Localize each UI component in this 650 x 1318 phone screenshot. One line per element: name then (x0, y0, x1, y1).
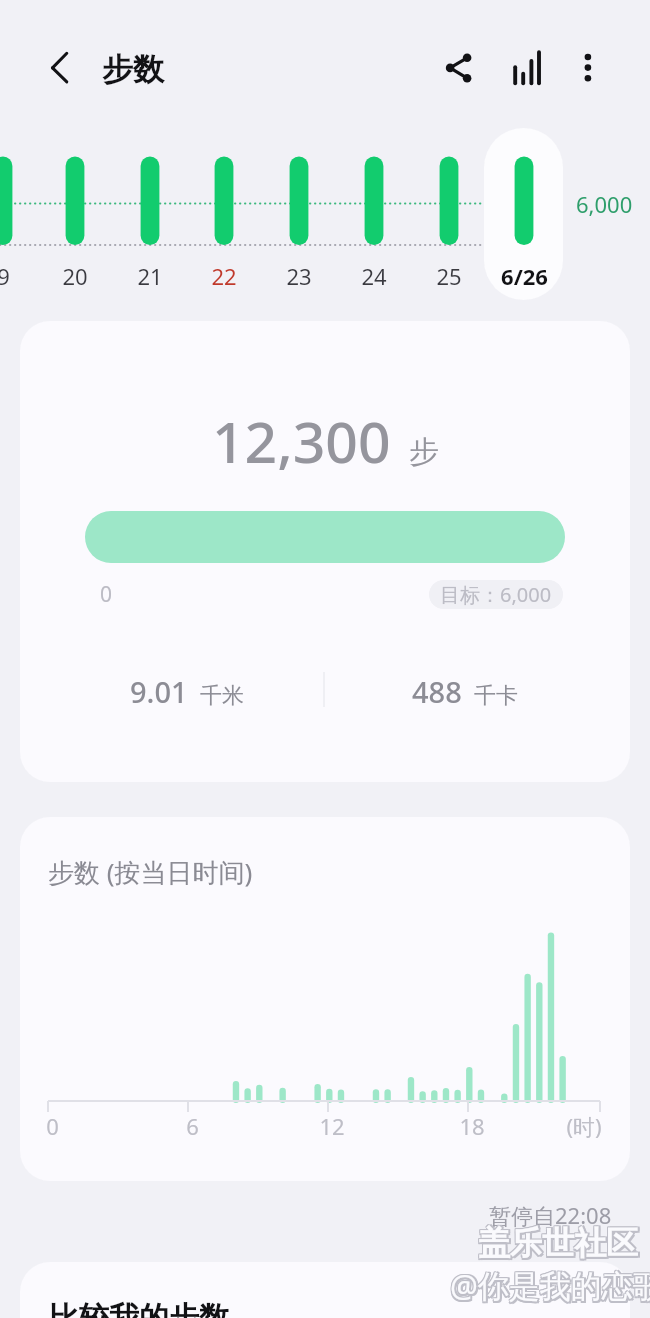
staticText: 盖乐世社区 (477, 1225, 637, 1265)
staticText: 6/26 (501, 261, 548, 291)
staticText: 6 (186, 1111, 199, 1141)
staticText: 0 (100, 580, 113, 609)
staticText: 20 (62, 261, 88, 291)
staticText: 21 (137, 261, 163, 291)
button[interactable]: 12,300 (20, 321, 630, 782)
staticText: 盖乐世社区 (480, 1222, 640, 1262)
staticText: @你是我的恋歌 (450, 1266, 650, 1308)
staticText: 22 (211, 261, 237, 291)
staticText: 千卡 (474, 682, 518, 710)
staticText: 盖乐世社区 (478, 1225, 638, 1265)
staticText: @你是我的恋歌 (452, 1266, 650, 1308)
staticText: 9.01 (130, 672, 188, 711)
staticText: 盖乐世社区 (478, 1223, 638, 1263)
staticText: 0 (46, 1111, 59, 1141)
staticText: 24 (361, 261, 387, 291)
button[interactable]: 步数 (按当日时间) (20, 817, 630, 1181)
staticText: 暂停自22:08 (489, 1200, 612, 1230)
button[interactable]: More options (563, 44, 613, 94)
button[interactable]: Trends (502, 44, 552, 94)
staticText: @你是我的恋歌 (449, 1264, 650, 1306)
staticText: (时) (566, 1111, 602, 1141)
staticText: 步 (409, 433, 439, 471)
staticText: 比较我的步数 (49, 1299, 229, 1318)
staticText: 千米 (200, 682, 244, 710)
staticText: 9 (0, 261, 10, 291)
staticText: @你是我的恋歌 (449, 1266, 650, 1308)
staticText: 488 (412, 672, 462, 711)
staticText: 18 (459, 1111, 485, 1141)
staticText: 步数 (102, 50, 164, 89)
staticText: @你是我的恋歌 (452, 1264, 650, 1306)
staticText: 6,000 (576, 189, 633, 218)
staticText: 12 (319, 1111, 345, 1141)
staticText: 25 (436, 261, 462, 291)
staticText: @你是我的恋歌 (450, 1263, 650, 1305)
staticText: 目标：6,000 (440, 581, 552, 608)
staticText: @你是我的恋歌 (452, 1263, 650, 1305)
staticText: @你是我的恋歌 (450, 1264, 650, 1306)
button[interactable]: 比较我的步数 (20, 1262, 630, 1318)
staticText: 步数 (按当日时间) (48, 854, 253, 890)
button[interactable]: Share (434, 44, 484, 94)
staticText: 盖乐世社区 (480, 1225, 640, 1265)
staticText: 盖乐世社区 (478, 1222, 638, 1262)
staticText: 盖乐世社区 (477, 1223, 637, 1263)
staticText: 盖乐世社区 (477, 1222, 637, 1262)
button[interactable]: 6/26 (484, 128, 563, 300)
staticText: 盖乐世社区 (480, 1223, 640, 1263)
staticText: 12,300 (212, 402, 391, 480)
button[interactable]: Back (32, 43, 82, 93)
staticText: 23 (286, 261, 312, 291)
staticText: @你是我的恋歌 (449, 1263, 650, 1305)
